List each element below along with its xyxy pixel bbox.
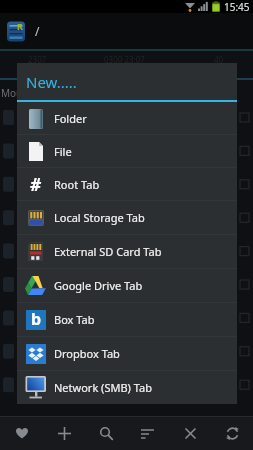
button[interactable]: b [17,303,237,336]
button[interactable] [211,417,253,450]
staticText: 40 [214,54,224,65]
staticText: Network (SMB) Tab [54,380,152,395]
button[interactable]: Local Storage Tab [17,201,237,234]
button[interactable]: Google Drive Tab [17,269,237,302]
button[interactable] [85,417,127,450]
button[interactable]: External SD Card Tab [17,235,237,268]
button[interactable]: Folder [17,102,237,134]
staticText: Local Storage Tab [54,210,145,225]
staticText: 15:45 [224,0,250,13]
button[interactable]: Network (SMB) Tab [17,371,237,404]
staticText: 0300 23:07 [104,54,145,65]
button[interactable]: # [17,168,237,200]
button[interactable]: File [17,135,237,167]
button[interactable] [43,417,85,450]
staticText: / [35,23,40,39]
staticText: 2307 [28,54,47,65]
staticText: Root Tab [54,177,100,192]
staticText: R [17,20,23,32]
staticText: Dropbox Tab [54,346,120,361]
staticText: Google Drive Tab [54,278,143,293]
button[interactable]: Dropbox Tab [17,337,237,370]
staticText: # [30,173,41,196]
staticText: Box Tab [54,312,95,327]
staticText: External SD Card Tab [54,244,162,259]
button[interactable] [127,417,169,450]
staticText: File [54,144,72,159]
button[interactable]: R [7,20,27,42]
staticText: Folder [54,111,87,126]
staticText: Mou [1,86,23,100]
button[interactable] [0,417,43,450]
staticText: New..... [26,72,77,92]
button[interactable] [169,417,211,450]
staticText: b [31,308,42,328]
